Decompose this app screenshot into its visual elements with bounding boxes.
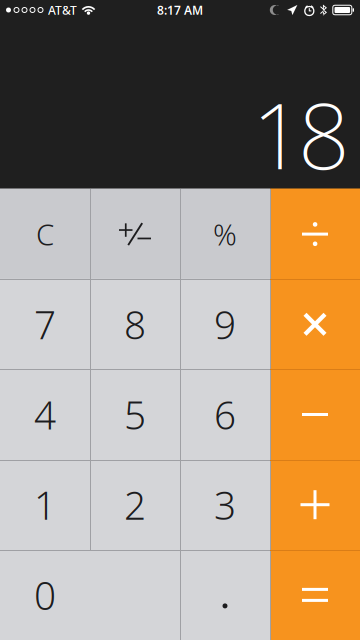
staticText: 9 [214, 299, 236, 350]
staticText: 8 [124, 299, 146, 350]
button[interactable]: 7 [0, 279, 90, 370]
button[interactable]: 1 [0, 459, 90, 550]
button[interactable]: 5 [90, 369, 180, 460]
button[interactable]: 3 [180, 459, 270, 550]
button[interactable]: 6 [180, 369, 270, 460]
button[interactable]: Divide [270, 188, 360, 280]
staticText: 6 [214, 389, 236, 440]
button[interactable]: Multiply [270, 279, 360, 370]
button[interactable]: Plus minus [90, 188, 180, 280]
button[interactable]: 0 [0, 549, 180, 640]
staticText: % [213, 215, 237, 254]
staticText: 0 [34, 569, 56, 620]
staticText: 4 [34, 389, 56, 440]
button[interactable]: Subtract [270, 369, 360, 460]
staticText: 8:17 AM [157, 2, 203, 18]
staticText: 1 [34, 479, 56, 530]
button[interactable]: 9 [180, 279, 270, 370]
staticText: 3 [214, 479, 236, 530]
staticText: 18 [252, 74, 350, 194]
button[interactable]: 8 [90, 279, 180, 370]
staticText: AT&T [48, 2, 77, 18]
button[interactable]: C [0, 188, 90, 280]
staticText: 7 [34, 299, 56, 350]
button[interactable]: 2 [90, 459, 180, 550]
staticText: 2 [124, 479, 146, 530]
button[interactable]: Add [270, 459, 360, 550]
button[interactable]: % [180, 188, 270, 280]
button[interactable]: Decimal point [180, 549, 270, 640]
button[interactable]: 4 [0, 369, 90, 460]
button[interactable]: Equals [270, 549, 360, 640]
staticText: 5 [124, 389, 146, 440]
staticText: C [36, 215, 54, 254]
